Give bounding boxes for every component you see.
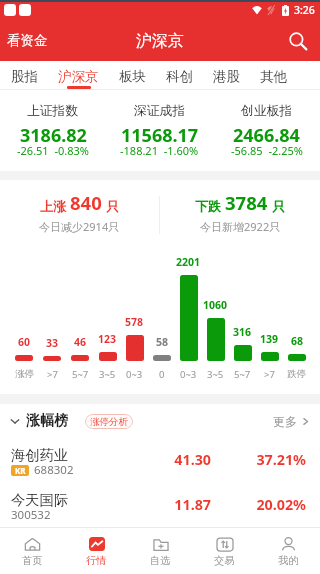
button[interactable]: 港股 — [203, 61, 250, 89]
button[interactable]: 股指 — [1, 61, 48, 89]
staticText: 68 — [291, 334, 304, 348]
staticText: -188.21 -1.60% — [120, 143, 199, 158]
staticText: 沪深京 — [58, 68, 99, 85]
staticText: 只 — [106, 198, 119, 214]
staticText: 涨停 — [15, 368, 34, 380]
staticText: 0~3 — [180, 368, 197, 381]
staticText: 20.02% — [236, 495, 306, 514]
staticText: 行情 — [86, 554, 107, 567]
button[interactable]: 578 — [121, 250, 148, 381]
staticText: 跌停 — [287, 368, 306, 380]
staticText: 首页 — [22, 554, 43, 567]
staticText: 5~7 — [234, 368, 251, 381]
button[interactable]: 自选 — [128, 528, 192, 574]
button[interactable]: 316 — [229, 250, 256, 381]
staticText: 41.30 — [141, 450, 211, 469]
staticText: 123 — [98, 332, 117, 346]
staticText: 涨幅榜 — [26, 412, 68, 430]
button[interactable]: 深证成指 — [106, 90, 213, 171]
button[interactable]: 科创 — [156, 61, 203, 89]
button[interactable]: 68 — [283, 250, 310, 380]
staticText: >7 — [47, 368, 58, 381]
button[interactable]: 我的 — [256, 528, 320, 574]
button[interactable]: 涨幅榜 — [10, 412, 68, 430]
button[interactable]: 创业板指 — [213, 90, 320, 171]
staticText: 37.21% — [236, 450, 306, 469]
staticText: 今天国际 — [11, 491, 69, 509]
staticText: 5~7 — [72, 368, 89, 381]
button[interactable]: 2201 — [175, 250, 202, 381]
staticText: 688302 — [34, 462, 74, 478]
button[interactable]: 沪深京 — [48, 61, 109, 89]
staticText: >7 — [264, 368, 275, 381]
staticText: 2201 — [176, 255, 201, 269]
staticText: 海创药业 — [11, 446, 69, 464]
staticText: 60 — [18, 335, 31, 349]
staticText: 0 — [159, 368, 165, 381]
staticText: 其他 — [260, 68, 287, 85]
button[interactable]: 行情 — [64, 528, 128, 574]
staticText: 1060 — [203, 298, 228, 312]
staticText: -26.51 -0.83% — [17, 143, 89, 158]
button[interactable]: 首页 — [0, 528, 64, 574]
staticText: 0~3 — [126, 368, 143, 381]
button[interactable]: 涨停分析 — [85, 414, 133, 429]
button[interactable]: Search — [282, 25, 314, 57]
button[interactable]: 1060 — [202, 250, 229, 381]
staticText: 上涨 — [40, 198, 66, 214]
button[interactable]: 46 — [66, 250, 94, 381]
staticText: 46 — [74, 335, 87, 349]
button[interactable]: 123 — [94, 250, 121, 381]
staticText: 33 — [46, 336, 59, 350]
staticText: 840 — [70, 190, 102, 215]
staticText: 139 — [260, 332, 279, 346]
staticText: 316 — [233, 325, 252, 339]
staticText: 港股 — [213, 68, 240, 85]
staticText: 科创 — [166, 68, 193, 85]
button[interactable]: 58 — [148, 250, 175, 381]
button[interactable]: 33 — [38, 250, 66, 381]
button[interactable]: 今天国际 — [0, 483, 320, 527]
button[interactable]: 上证指数 — [0, 90, 106, 171]
staticText: 3:26 — [294, 3, 315, 17]
staticText: 3186.82 — [20, 123, 87, 148]
staticText: 创业板指 — [241, 103, 293, 119]
button[interactable]: 上涨 — [0, 180, 159, 250]
button[interactable]: 更多 — [273, 414, 310, 429]
staticText: 今日新增2922只 — [200, 219, 281, 234]
staticText: 自选 — [150, 554, 171, 567]
staticText: 上证指数 — [27, 103, 79, 119]
staticText: 更多 — [273, 414, 297, 429]
staticText: 今日减少2914只 — [39, 219, 120, 234]
staticText: 我的 — [278, 554, 299, 567]
button[interactable]: 139 — [256, 250, 283, 381]
button[interactable]: 看资金 — [0, 29, 54, 52]
staticText: 578 — [125, 315, 144, 329]
staticText: 11.87 — [141, 495, 211, 514]
staticText: 3~5 — [99, 368, 116, 381]
staticText: 沪深京 — [136, 31, 184, 51]
staticText: 板块 — [119, 68, 146, 85]
staticText: 3~5 — [207, 368, 224, 381]
staticText: 股指 — [11, 68, 38, 85]
staticText: 交易 — [214, 554, 235, 567]
button[interactable]: 其他 — [250, 61, 297, 89]
button[interactable]: 60 — [10, 250, 38, 380]
button[interactable]: 下跌 — [160, 180, 320, 250]
staticText: KR — [15, 465, 26, 476]
staticText: 2466.84 — [233, 123, 300, 148]
staticText: 深证成指 — [134, 103, 186, 119]
staticText: 只 — [272, 198, 285, 214]
staticText: 58 — [156, 335, 169, 349]
staticText: -56.85 -2.25% — [231, 143, 303, 158]
staticText: 300532 — [11, 507, 51, 523]
button[interactable]: 板块 — [109, 61, 156, 89]
button[interactable]: 海创药业 — [0, 438, 320, 483]
button[interactable]: 交易 — [192, 528, 256, 574]
staticText: 下跌 — [195, 198, 221, 214]
staticText: 11568.17 — [121, 123, 199, 148]
staticText: 涨停分析 — [90, 416, 128, 428]
staticText: 3784 — [225, 190, 268, 215]
